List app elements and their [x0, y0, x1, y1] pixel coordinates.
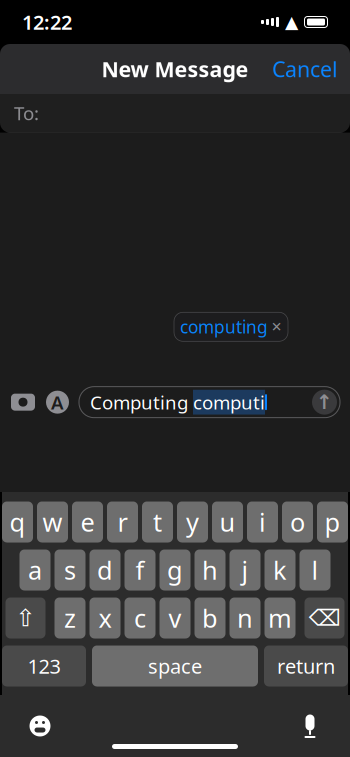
staticText: r	[117, 505, 127, 539]
button[interactable]: return	[264, 645, 348, 686]
staticText: space	[148, 653, 202, 679]
button[interactable]: o	[282, 501, 313, 542]
staticText: To:	[14, 101, 39, 125]
staticText: s	[64, 553, 76, 587]
staticText: a	[28, 553, 42, 587]
button[interactable]: z	[54, 597, 85, 638]
button[interactable]: 123	[2, 645, 86, 686]
button[interactable]: m	[264, 597, 295, 638]
button[interactable]: r	[107, 501, 138, 542]
staticText: return	[277, 653, 335, 679]
button[interactable]: Camera	[10, 392, 36, 413]
button[interactable]: Apps	[45, 390, 70, 415]
staticText: k	[273, 553, 287, 587]
staticText: c	[134, 601, 146, 635]
button[interactable]: v	[159, 597, 190, 638]
button[interactable]: t	[142, 501, 173, 542]
staticText: b	[202, 601, 218, 635]
staticText: ⌫	[308, 605, 340, 631]
staticText: ▲	[285, 12, 298, 32]
button[interactable]: l	[299, 549, 330, 590]
button[interactable]: c	[124, 597, 155, 638]
staticText: q	[9, 505, 25, 539]
button[interactable]: w	[37, 501, 68, 542]
staticText: v	[168, 601, 181, 635]
button[interactable]: Cancel	[260, 45, 350, 93]
staticText: New Message	[101, 55, 248, 83]
staticText: Cancel	[272, 55, 338, 83]
button[interactable]: g	[159, 549, 190, 590]
staticText: t	[153, 505, 162, 539]
button[interactable]: u	[212, 501, 243, 542]
staticText: w	[42, 505, 62, 539]
staticText: j	[241, 553, 248, 587]
button[interactable]: ⇧	[5, 597, 45, 638]
button[interactable]: Send	[311, 389, 338, 416]
staticText: ✕	[271, 319, 282, 334]
staticText: 12:22	[22, 9, 72, 35]
staticText: 123	[27, 653, 60, 679]
button[interactable]: k	[264, 549, 295, 590]
button[interactable]: ⌫	[304, 597, 344, 638]
button[interactable]: Dictate	[294, 710, 326, 742]
staticText: n	[237, 601, 253, 635]
staticText: Computing	[90, 390, 193, 415]
button[interactable]: p	[317, 501, 348, 542]
staticText: ↑	[316, 391, 333, 413]
button[interactable]: y	[177, 501, 208, 542]
staticText: y	[186, 505, 199, 539]
button[interactable]: d	[89, 549, 120, 590]
staticText: z	[64, 601, 76, 635]
button[interactable]: q	[2, 501, 33, 542]
button[interactable]: j	[229, 549, 260, 590]
staticText: A	[51, 390, 64, 415]
staticText: x	[98, 601, 111, 635]
button[interactable]: a	[19, 549, 50, 590]
staticText: u	[219, 505, 235, 539]
button[interactable]: s	[54, 549, 85, 590]
staticText: p	[324, 505, 340, 539]
button[interactable]: space	[92, 645, 258, 686]
button[interactable]: i	[247, 501, 278, 542]
staticText: g	[167, 553, 183, 587]
staticText: l	[311, 553, 318, 587]
staticText: computing	[180, 315, 268, 338]
staticText: h	[202, 553, 218, 587]
button[interactable]: n	[229, 597, 260, 638]
staticText: f	[135, 553, 144, 587]
staticText: e	[80, 505, 94, 539]
button[interactable]: h	[194, 549, 225, 590]
button[interactable]: f	[124, 549, 155, 590]
staticText: i	[259, 505, 266, 539]
button[interactable]: b	[194, 597, 225, 638]
staticText: o	[290, 505, 305, 539]
staticText: ⇧	[15, 604, 35, 632]
button[interactable]: e	[72, 501, 103, 542]
button[interactable]: x	[89, 597, 120, 638]
staticText: m	[268, 601, 292, 635]
staticText: d	[97, 553, 113, 587]
button[interactable]: Emoji keyboard	[24, 710, 56, 742]
staticText: computi	[193, 390, 265, 415]
